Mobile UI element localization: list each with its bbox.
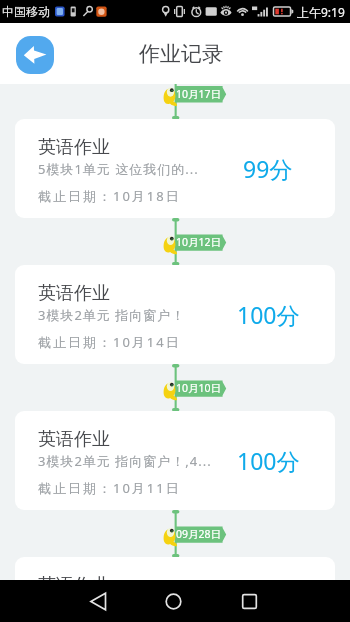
- staticText: 英语作业: [38, 136, 110, 159]
- staticText: 09月28日: [176, 527, 222, 541]
- staticText: 截止日期：10月14日: [38, 333, 181, 351]
- button[interactable]: 英语作业: [15, 119, 335, 218]
- staticText: 5模块1单元 这位我们的...: [38, 160, 273, 178]
- staticText: 上午9:19: [297, 4, 345, 20]
- button[interactable]: Back: [16, 36, 54, 74]
- staticText: 英语作业: [38, 282, 110, 305]
- staticText: 3模块2单元 指向窗户！: [38, 306, 273, 324]
- staticText: 10月10日: [176, 381, 222, 395]
- button[interactable]: 英语作业: [15, 265, 335, 364]
- staticText: 100分: [237, 574, 300, 605]
- button[interactable]: 英语作业: [15, 557, 335, 622]
- staticText: 3模块2单元 指向窗户！: [38, 598, 273, 616]
- button[interactable]: Recents: [231, 583, 268, 620]
- staticText: 3模块2单元 指向窗户！,4...: [38, 452, 273, 470]
- staticText: 作业记录: [139, 41, 223, 67]
- staticText: 截止日期：10月11日: [38, 479, 181, 497]
- button[interactable]: Back: [80, 583, 117, 620]
- button[interactable]: 英语作业: [15, 411, 335, 510]
- staticText: 中国移动: [2, 4, 50, 19]
- button[interactable]: Home: [155, 583, 192, 620]
- staticText: 100分: [237, 445, 300, 476]
- staticText: 99分: [243, 153, 293, 184]
- staticText: 100分: [237, 299, 300, 330]
- staticText: 英语作业: [38, 428, 110, 451]
- staticText: 英语作业: [38, 574, 110, 597]
- staticText: 截止日期：10月18日: [38, 187, 181, 205]
- staticText: 10月12日: [176, 235, 222, 249]
- staticText: 10月17日: [176, 87, 222, 101]
